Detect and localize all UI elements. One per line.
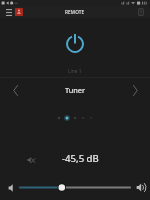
button[interactable] xyxy=(55,114,63,122)
button[interactable] xyxy=(19,180,131,195)
staticText: REMOTE xyxy=(65,9,85,15)
button[interactable]: Volume up xyxy=(134,180,149,195)
button[interactable]: Volume down xyxy=(5,180,20,195)
button[interactable] xyxy=(87,114,95,122)
staticText: Line 1 xyxy=(68,68,82,75)
button[interactable]: Mute xyxy=(24,153,38,167)
button[interactable] xyxy=(71,114,79,122)
staticText: Tuner xyxy=(65,85,86,95)
button[interactable] xyxy=(63,114,71,122)
button[interactable] xyxy=(79,114,87,122)
button[interactable]: App logo xyxy=(15,8,23,16)
button[interactable]: Next source xyxy=(120,81,150,99)
button[interactable]: Power xyxy=(61,30,89,58)
button[interactable]: Previous source xyxy=(0,81,30,99)
button[interactable]: Device xyxy=(134,6,148,18)
button[interactable]: Menu xyxy=(2,6,16,18)
staticText: -45,5 dB xyxy=(62,152,99,165)
